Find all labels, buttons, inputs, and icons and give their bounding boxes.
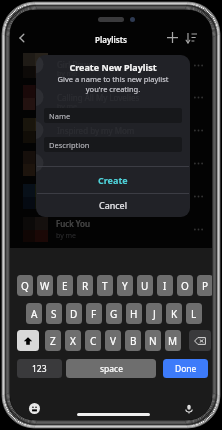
button[interactable]: C <box>85 330 101 351</box>
button[interactable]: Calling All My Lovelies <box>10 84 212 110</box>
staticText: C <box>90 334 97 348</box>
staticText: by me <box>57 69 78 79</box>
button[interactable]: G <box>106 303 122 324</box>
staticText: P <box>202 279 209 293</box>
button[interactable]: M <box>165 330 181 351</box>
button[interactable]: Inspired by my Mom <box>10 117 212 143</box>
staticText: A <box>31 307 38 321</box>
button[interactable]: A <box>26 303 42 324</box>
button[interactable]: Q <box>17 275 33 296</box>
staticText: Girl Power <box>57 59 96 70</box>
staticText: Girl Power <box>56 54 96 65</box>
button[interactable]: B <box>125 330 141 351</box>
staticText: space <box>100 363 123 375</box>
staticText: D <box>70 307 78 321</box>
button[interactable]: Name <box>44 108 182 123</box>
button[interactable]: More options <box>189 154 207 172</box>
staticText: N <box>149 334 157 348</box>
button[interactable]: H <box>126 303 142 324</box>
button[interactable]: O <box>177 275 193 296</box>
button[interactable]: J <box>146 303 162 324</box>
staticText: by me <box>56 67 77 77</box>
button[interactable]: E <box>57 275 73 296</box>
staticText: by me <box>56 165 77 175</box>
button[interactable]: Backspace <box>189 330 211 351</box>
button[interactable]: Y <box>117 275 133 296</box>
staticText: Calling All My Lovelies <box>56 86 141 97</box>
button[interactable]: More options <box>189 56 207 74</box>
staticText: S <box>51 307 57 321</box>
button[interactable]: X <box>65 330 81 351</box>
staticText: Y <box>122 279 128 293</box>
staticText: T <box>102 279 108 293</box>
staticText: Create New Playlist <box>36 61 190 73</box>
staticText: Z <box>50 334 56 348</box>
staticText: V <box>110 334 116 348</box>
button[interactable]: Cancel <box>36 193 190 217</box>
staticText: Q <box>21 279 29 293</box>
button[interactable]: Dictation <box>182 402 195 415</box>
button[interactable]: Description <box>44 137 182 152</box>
button[interactable]: Add playlist <box>162 27 182 47</box>
staticText: B <box>130 334 137 348</box>
staticText: K <box>171 307 178 321</box>
staticText: R <box>82 279 89 293</box>
button[interactable]: S <box>46 303 62 324</box>
staticText: G <box>110 307 118 321</box>
staticText: Sunday Morning <box>56 185 120 196</box>
staticText: Inspired by my Mom <box>57 125 135 136</box>
staticText: O <box>181 279 189 293</box>
staticText: by me <box>56 132 77 142</box>
button[interactable]: T <box>97 275 113 296</box>
staticText: by me <box>56 99 77 109</box>
button[interactable]: F <box>86 303 102 324</box>
staticText: Give a name to this new playlist you're … <box>36 74 190 94</box>
button[interactable]: Pump It Up <box>10 150 212 176</box>
button[interactable]: Sort <box>181 27 202 48</box>
staticText: U <box>141 279 149 293</box>
button[interactable]: V <box>105 330 121 351</box>
staticText: Playlists <box>10 34 212 45</box>
button[interactable]: space <box>66 359 156 378</box>
button[interactable]: Emoji <box>28 402 41 415</box>
button[interactable]: 123 <box>17 359 62 378</box>
button[interactable]: More options <box>189 220 207 238</box>
staticText: Name <box>49 111 71 121</box>
button[interactable]: N <box>145 330 161 351</box>
button[interactable]: P <box>197 275 212 296</box>
button[interactable]: Z <box>45 330 61 351</box>
staticText: Cancel <box>99 199 128 211</box>
staticText: H <box>130 307 138 321</box>
staticText: Description <box>49 140 90 150</box>
staticText: W <box>40 279 50 293</box>
staticText: E <box>62 279 68 293</box>
button[interactable]: U <box>137 275 153 296</box>
button[interactable]: Create <box>36 167 190 193</box>
staticText: by me <box>57 135 78 145</box>
button[interactable]: Fuck You <box>10 216 212 242</box>
button[interactable]: More options <box>189 187 207 205</box>
button[interactable]: Back <box>12 28 32 48</box>
button[interactable]: R <box>77 275 93 296</box>
button[interactable]: W <box>37 275 53 296</box>
button[interactable]: I <box>157 275 173 296</box>
staticText: Inspired by my Mom <box>56 119 135 130</box>
button[interactable]: Shift <box>17 330 39 351</box>
button[interactable]: More options <box>189 121 207 139</box>
staticText: Calling All My Lovelies <box>57 92 140 103</box>
button[interactable]: D <box>66 303 82 324</box>
button[interactable]: Sunday Morning <box>10 183 212 209</box>
button[interactable]: More options <box>189 88 207 106</box>
staticText: Done <box>175 363 197 375</box>
button[interactable]: Girl Power <box>10 52 212 78</box>
button[interactable]: Done <box>163 359 208 378</box>
staticText: by me <box>57 102 78 112</box>
button[interactable]: K <box>166 303 182 324</box>
staticText: J <box>153 307 156 321</box>
staticText: F <box>91 307 97 321</box>
staticText: by me <box>56 231 77 241</box>
button[interactable]: L <box>186 303 202 324</box>
staticText: X <box>70 334 76 348</box>
staticText: L <box>191 307 197 321</box>
